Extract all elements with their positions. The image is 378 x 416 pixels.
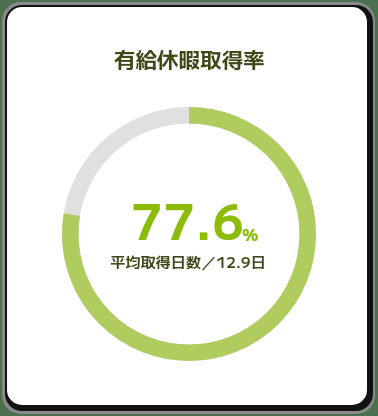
button[interactable]: 有給休暇取得率 77.6% 平均取得日数 12.9日 [7,7,367,405]
staticText: 平均取得日数／12.9日 [110,250,266,272]
staticText: % [242,221,259,246]
staticText: 77.6 [131,184,245,254]
staticText: 有給休暇取得率 [114,43,265,74]
